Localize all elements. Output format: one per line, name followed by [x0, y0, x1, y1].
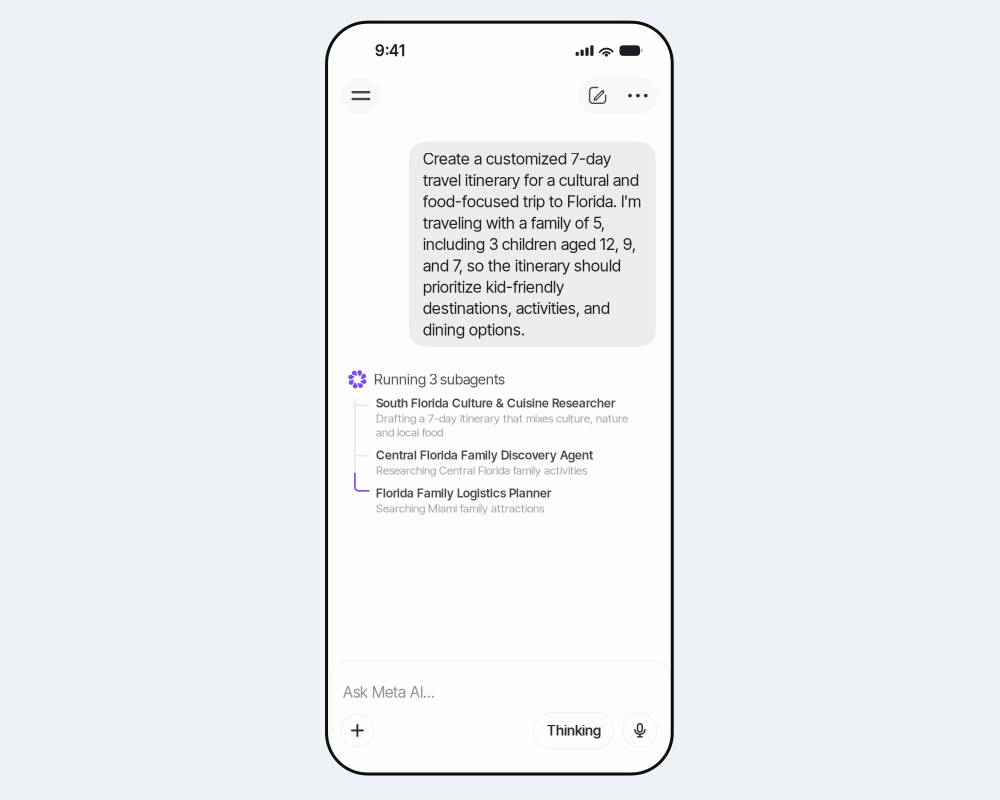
- staticText: Central Florida Family Discovery Agent: [376, 448, 593, 462]
- staticText: Thinking: [547, 722, 601, 739]
- button[interactable]: Menu: [342, 77, 380, 115]
- staticText: Ask Meta AI...: [343, 683, 435, 701]
- button[interactable]: New chat: [578, 77, 618, 115]
- staticText: Florida Family Logistics Planner: [376, 486, 551, 500]
- staticText: Create a customized 7-day travel itinera…: [423, 149, 641, 339]
- staticText: Researching Central Florida family activ…: [376, 463, 587, 477]
- staticText: Running 3 subagents: [374, 371, 505, 388]
- button[interactable]: Voice input: [623, 713, 657, 747]
- staticText: South Florida Culture & Cuisine Research…: [376, 396, 615, 410]
- button[interactable]: Thinking: [534, 712, 614, 748]
- staticText: Drafting a 7-day itinerary that mixes cu…: [376, 411, 628, 439]
- button[interactable]: More options: [618, 77, 658, 115]
- button[interactable]: Add attachment: [341, 714, 374, 747]
- staticText: Searching Miami family attractions: [376, 501, 544, 515]
- staticText: 9:41: [375, 41, 405, 60]
